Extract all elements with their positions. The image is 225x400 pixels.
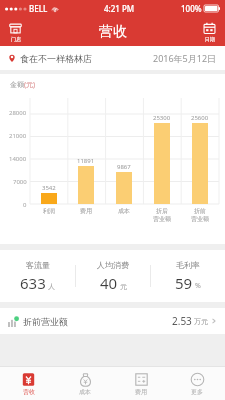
staticText: 4:21 PM bbox=[104, 3, 135, 14]
staticText: 成本 bbox=[79, 388, 91, 396]
staticText: 2016年5月12日 bbox=[153, 52, 217, 64]
button[interactable]: 日期 bbox=[201, 22, 218, 42]
staticText: 2.53 bbox=[172, 314, 192, 328]
staticText: 营收 bbox=[99, 23, 127, 41]
button[interactable]: 费用 bbox=[113, 367, 169, 400]
staticText: 633 bbox=[20, 273, 46, 293]
button[interactable]: 客流量 bbox=[0, 250, 75, 302]
staticText: 折前 bbox=[194, 207, 206, 215]
staticText: 食在不一样格林店 bbox=[20, 53, 92, 64]
staticText: 11891 bbox=[77, 157, 95, 165]
staticText: 7000 bbox=[13, 178, 27, 186]
staticText: 折后 bbox=[156, 207, 168, 215]
staticText: 人 bbox=[48, 282, 55, 291]
staticText: 日期 bbox=[205, 36, 215, 42]
staticText: 25600 bbox=[191, 114, 209, 122]
staticText: 万元 bbox=[194, 317, 208, 326]
staticText: 人均消费 bbox=[97, 260, 129, 270]
button[interactable]: 毛利率 bbox=[151, 250, 225, 302]
staticText: BELL bbox=[29, 3, 48, 14]
staticText: 28000 bbox=[9, 109, 27, 117]
button[interactable]: 折前营业额 bbox=[0, 308, 225, 334]
staticText: 21000 bbox=[9, 132, 27, 140]
staticText: 金额 bbox=[10, 80, 24, 89]
staticText: 0 bbox=[23, 201, 27, 209]
staticText: 费用 bbox=[80, 207, 92, 215]
button[interactable]: 成本 bbox=[57, 367, 113, 400]
staticText: 折前营业额 bbox=[23, 316, 68, 327]
staticText: 营业额 bbox=[191, 215, 209, 223]
button[interactable]: 食在不一样格林店 bbox=[0, 46, 225, 70]
staticText: 营收 bbox=[23, 388, 35, 396]
staticText: 100% bbox=[181, 3, 202, 14]
staticText: 更多 bbox=[191, 388, 203, 396]
staticText: % bbox=[195, 281, 201, 291]
staticText: 40 bbox=[100, 273, 118, 293]
staticText: 59 bbox=[175, 273, 193, 293]
staticText: 营业额 bbox=[153, 215, 171, 223]
staticText: 3542 bbox=[42, 184, 56, 192]
button[interactable]: 人均消费 bbox=[76, 250, 150, 302]
button[interactable]: 营收 bbox=[0, 367, 57, 400]
staticText: 利润 bbox=[43, 207, 55, 215]
staticText: 毛利率 bbox=[176, 260, 200, 270]
staticText: 25300 bbox=[153, 114, 171, 122]
staticText: 门店 bbox=[11, 36, 21, 42]
staticText: 成本 bbox=[118, 207, 130, 215]
staticText: 费用 bbox=[135, 388, 147, 396]
staticText: 客流量 bbox=[26, 260, 50, 270]
button[interactable]: 门店 bbox=[7, 22, 24, 42]
button[interactable]: 更多 bbox=[169, 367, 225, 400]
staticText: 14000 bbox=[9, 155, 27, 163]
staticText: 元 bbox=[120, 282, 127, 291]
staticText: (元) bbox=[24, 80, 36, 90]
staticText: 9867 bbox=[117, 163, 131, 171]
